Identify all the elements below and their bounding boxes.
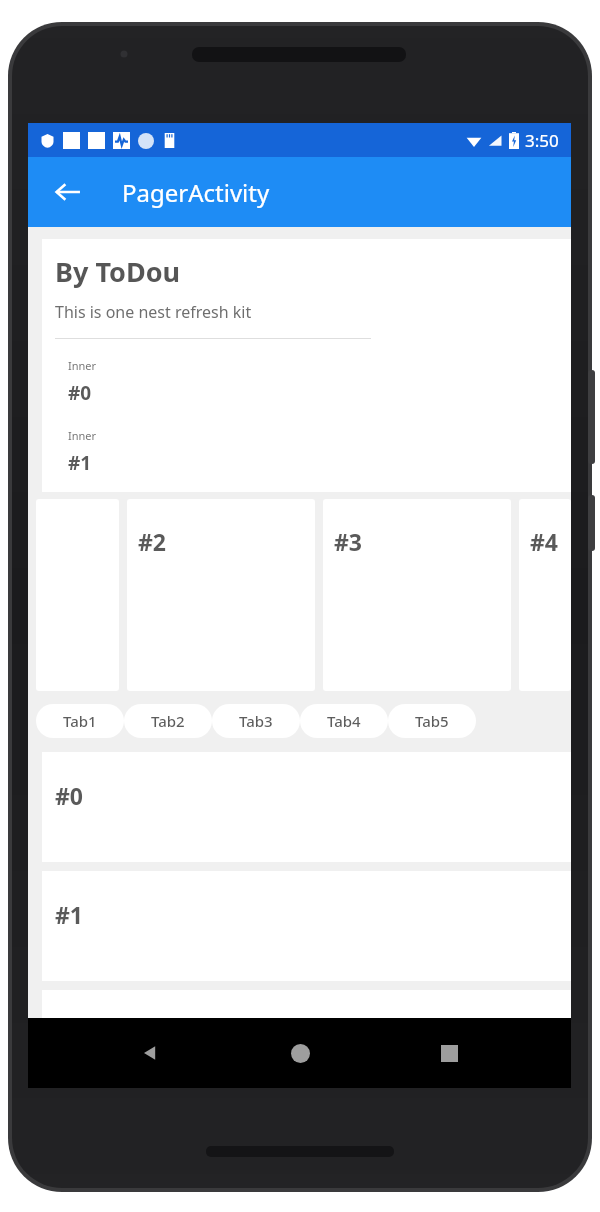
staticText: #0 <box>68 380 92 406</box>
button[interactable]: Tab1 <box>36 704 124 738</box>
button[interactable]: #4 <box>519 499 571 691</box>
staticText: Tab1 <box>63 711 97 731</box>
staticText: By ToDou <box>55 253 181 290</box>
staticText: #2 <box>138 526 167 557</box>
button[interactable]: #2 <box>127 499 315 691</box>
button[interactable]: Tab2 <box>124 704 212 738</box>
staticText: Tab3 <box>239 711 273 731</box>
staticText: #0 <box>55 780 84 811</box>
button[interactable]: Tab3 <box>212 704 300 738</box>
staticText: Tab2 <box>151 711 185 731</box>
button[interactable]: Back <box>42 166 94 218</box>
button[interactable]: By ToDou <box>42 239 571 492</box>
staticText: Inner <box>68 428 97 443</box>
button[interactable]: #0 <box>42 752 571 862</box>
staticText: #1 <box>68 450 92 476</box>
staticText: #4 <box>530 526 559 557</box>
button[interactable]: Home <box>272 1025 328 1081</box>
staticText: #1 <box>55 899 84 930</box>
button[interactable]: Tab4 <box>300 704 388 738</box>
button[interactable]: Tab5 <box>388 704 476 738</box>
staticText: This is one nest refresh kit <box>55 301 252 323</box>
staticText: Tab5 <box>415 711 449 731</box>
staticText: #3 <box>334 526 363 557</box>
button[interactable]: Back <box>122 1025 178 1081</box>
button[interactable]: Recents <box>421 1025 477 1081</box>
staticText: Tab4 <box>327 711 361 731</box>
staticText: PagerActivity <box>122 176 270 209</box>
button[interactable]: #1 <box>42 871 571 981</box>
staticText: 3:50 <box>525 129 559 152</box>
button[interactable]: #3 <box>323 499 511 691</box>
staticText: Inner <box>68 358 97 373</box>
